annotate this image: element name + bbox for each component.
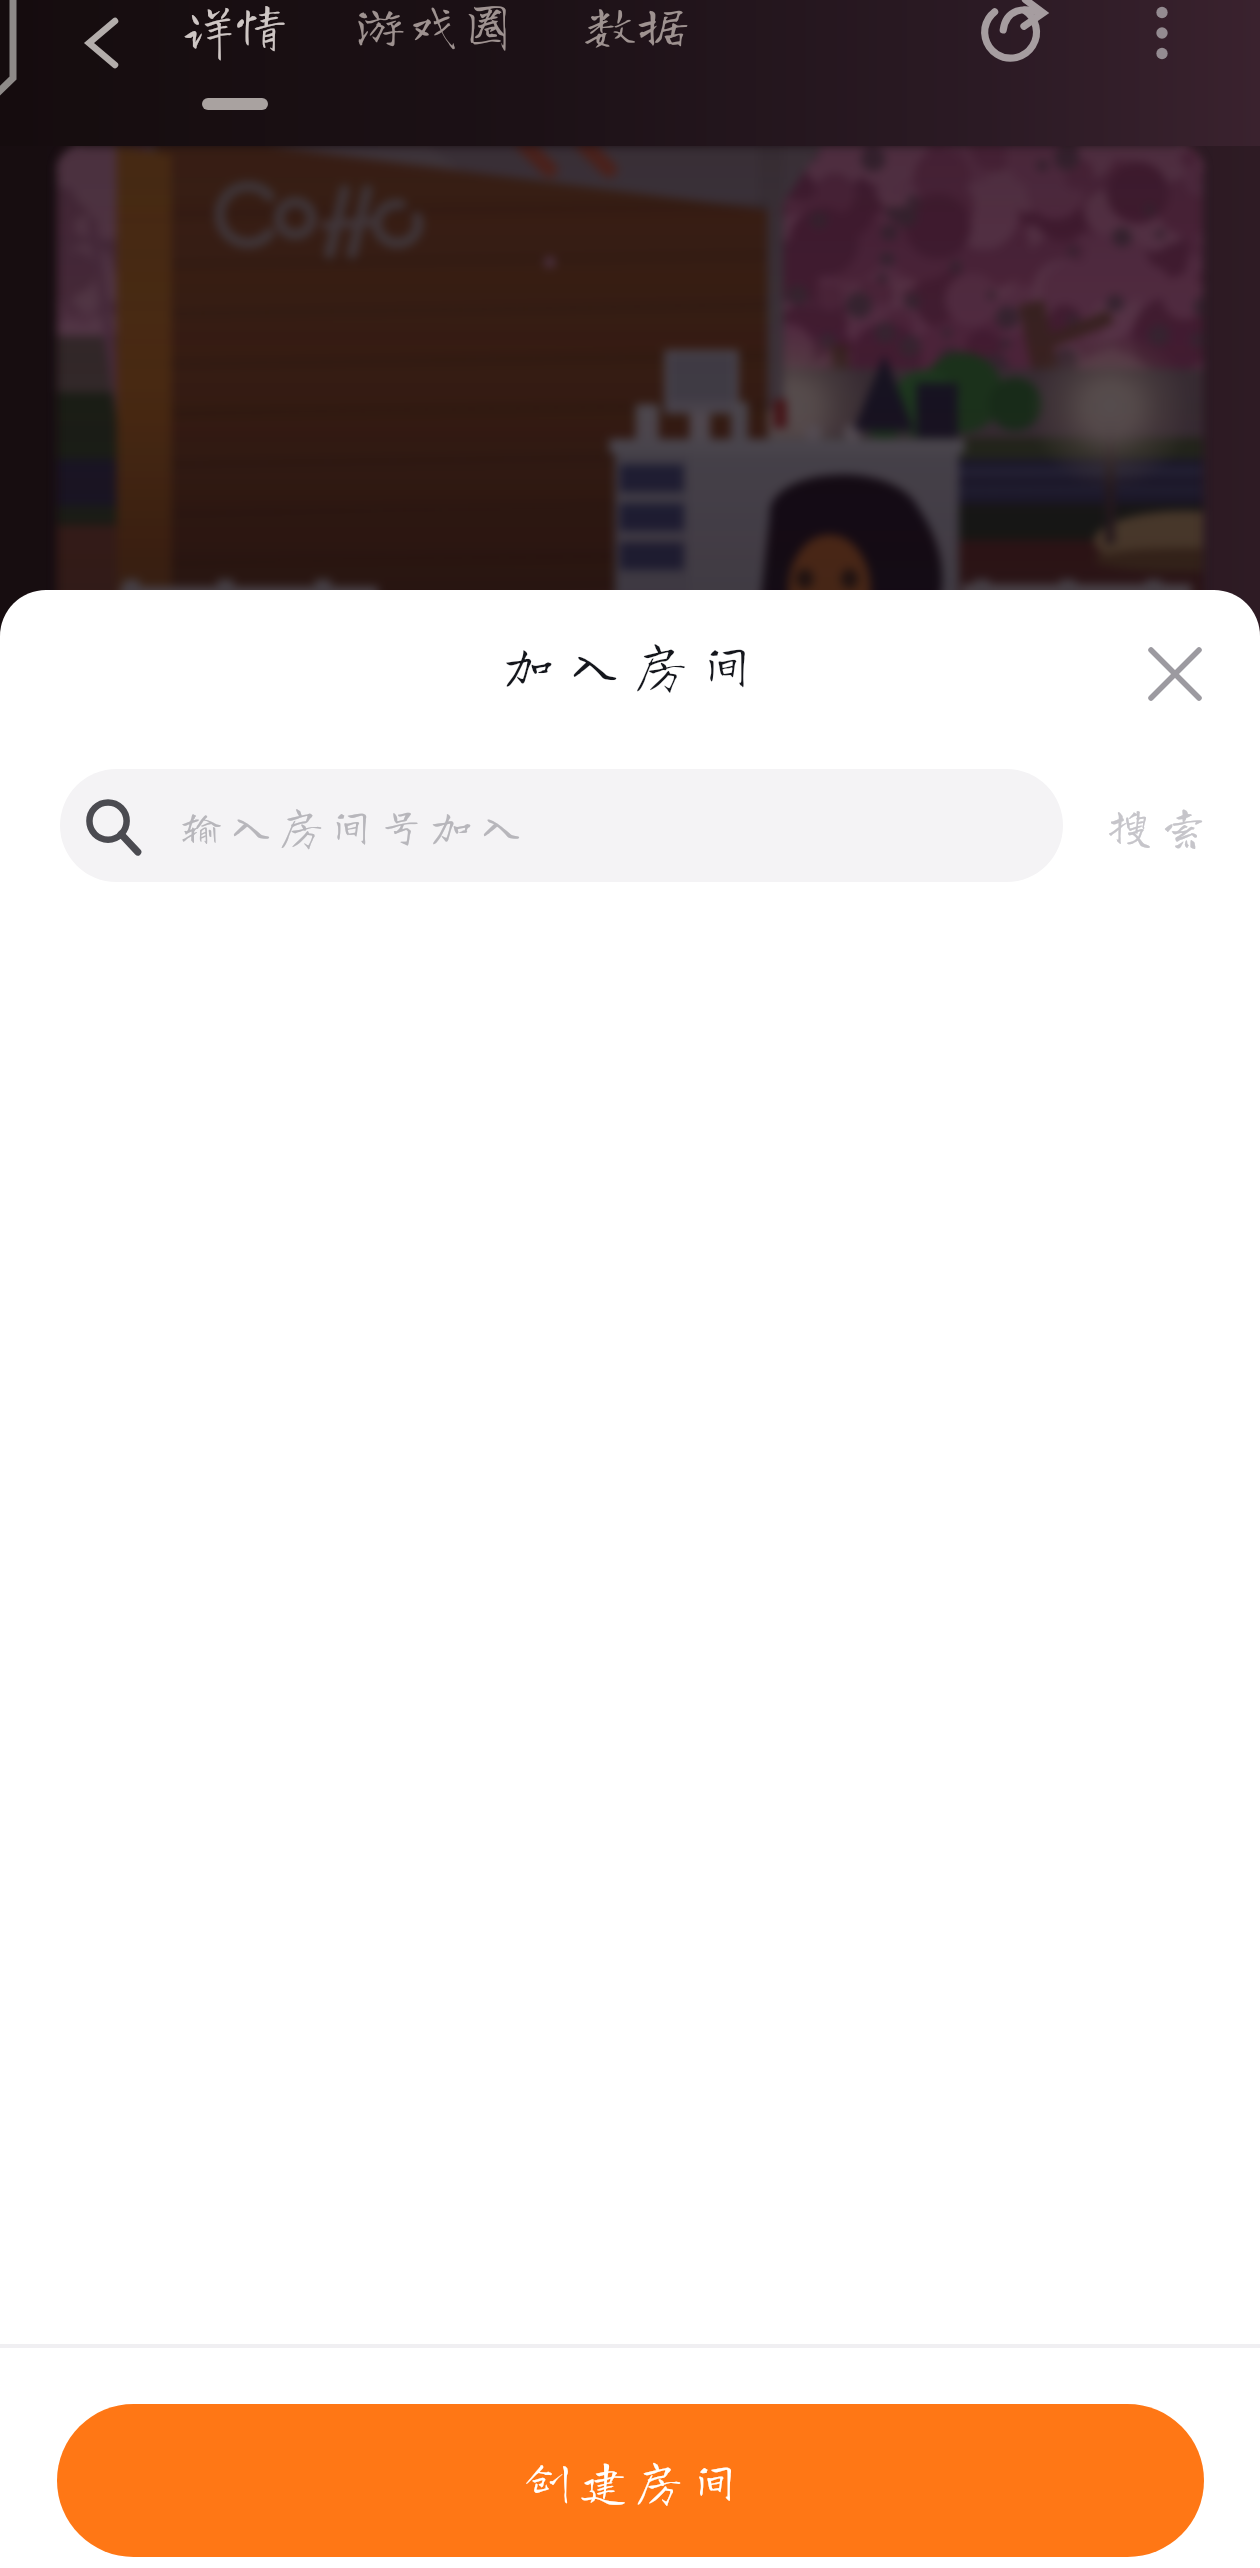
staticText: 输入房间号加入: [180, 804, 530, 847]
button[interactable]: 搜索: [1063, 769, 1260, 882]
button[interactable]: Share: [963, 0, 1073, 85]
staticText: 创建房间: [519, 2458, 743, 2504]
button[interactable]: 游戏圈: [344, 0, 526, 146]
button[interactable]: Back: [58, 0, 144, 86]
staticText: 搜索: [1107, 803, 1216, 848]
staticText: 游戏圈: [355, 0, 515, 50]
staticText: 数据: [584, 0, 691, 50]
button[interactable]: 输入房间号加入: [60, 769, 1063, 882]
button[interactable]: 详情: [176, 0, 294, 146]
staticText: 详情: [182, 0, 289, 50]
button[interactable]: 创建房间: [57, 2404, 1204, 2557]
button[interactable]: More options: [1107, 0, 1217, 88]
button[interactable]: Close: [1127, 626, 1223, 722]
staticText: 加入房间: [503, 638, 768, 690]
button[interactable]: 数据: [574, 0, 700, 146]
